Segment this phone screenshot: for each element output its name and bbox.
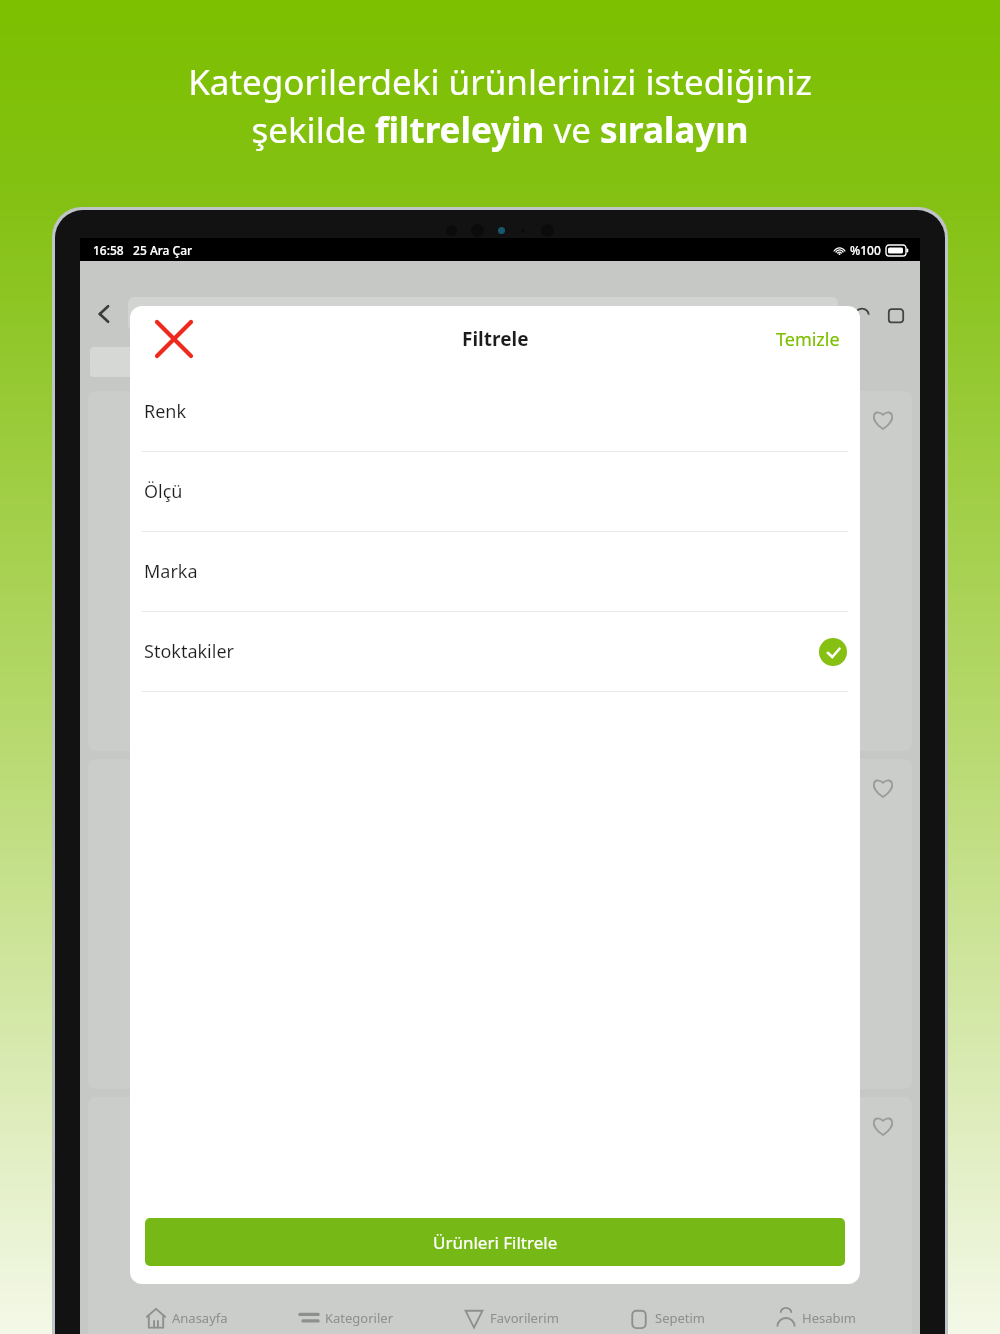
- staticText: Stoktakiler: [144, 639, 234, 664]
- button[interactable]: Sepetim: [623, 1306, 709, 1330]
- staticText: Filtrele: [462, 326, 529, 352]
- button[interactable]: Marka: [130, 532, 860, 612]
- staticText: Sepetim: [655, 1309, 705, 1327]
- staticText: Ürünleri Filtrele: [433, 1231, 558, 1254]
- button[interactable]: Anasayfa: [140, 1306, 232, 1330]
- staticText: Favorilerim: [490, 1309, 559, 1327]
- staticText: %100: [850, 242, 881, 258]
- button[interactable]: Kapat: [148, 313, 200, 365]
- staticText: Hesabım: [802, 1309, 856, 1327]
- staticText: 16:58 25 Ara Çar: [93, 242, 193, 258]
- button[interactable]: Kategoriler: [293, 1306, 398, 1330]
- button[interactable]: Ölçü: [130, 452, 860, 532]
- staticText: Renk: [144, 399, 187, 424]
- button[interactable]: Favorilerim: [458, 1306, 563, 1330]
- button[interactable]: Renk: [130, 372, 860, 452]
- staticText: Anasayfa: [172, 1309, 228, 1327]
- button[interactable]: Hesabım: [770, 1306, 860, 1330]
- button[interactable]: Temizle: [756, 315, 860, 364]
- button[interactable]: Stoktakiler: [130, 612, 860, 692]
- staticText: Kategoriler: [325, 1309, 394, 1327]
- staticText: Temizle: [776, 327, 840, 352]
- button[interactable]: Ürünleri Filtrele: [145, 1218, 845, 1266]
- staticText: Kategorilerdeki ürünlerinizi istediğiniz…: [60, 58, 940, 153]
- staticText: Ölçü: [144, 479, 183, 504]
- staticText: Marka: [144, 559, 198, 584]
